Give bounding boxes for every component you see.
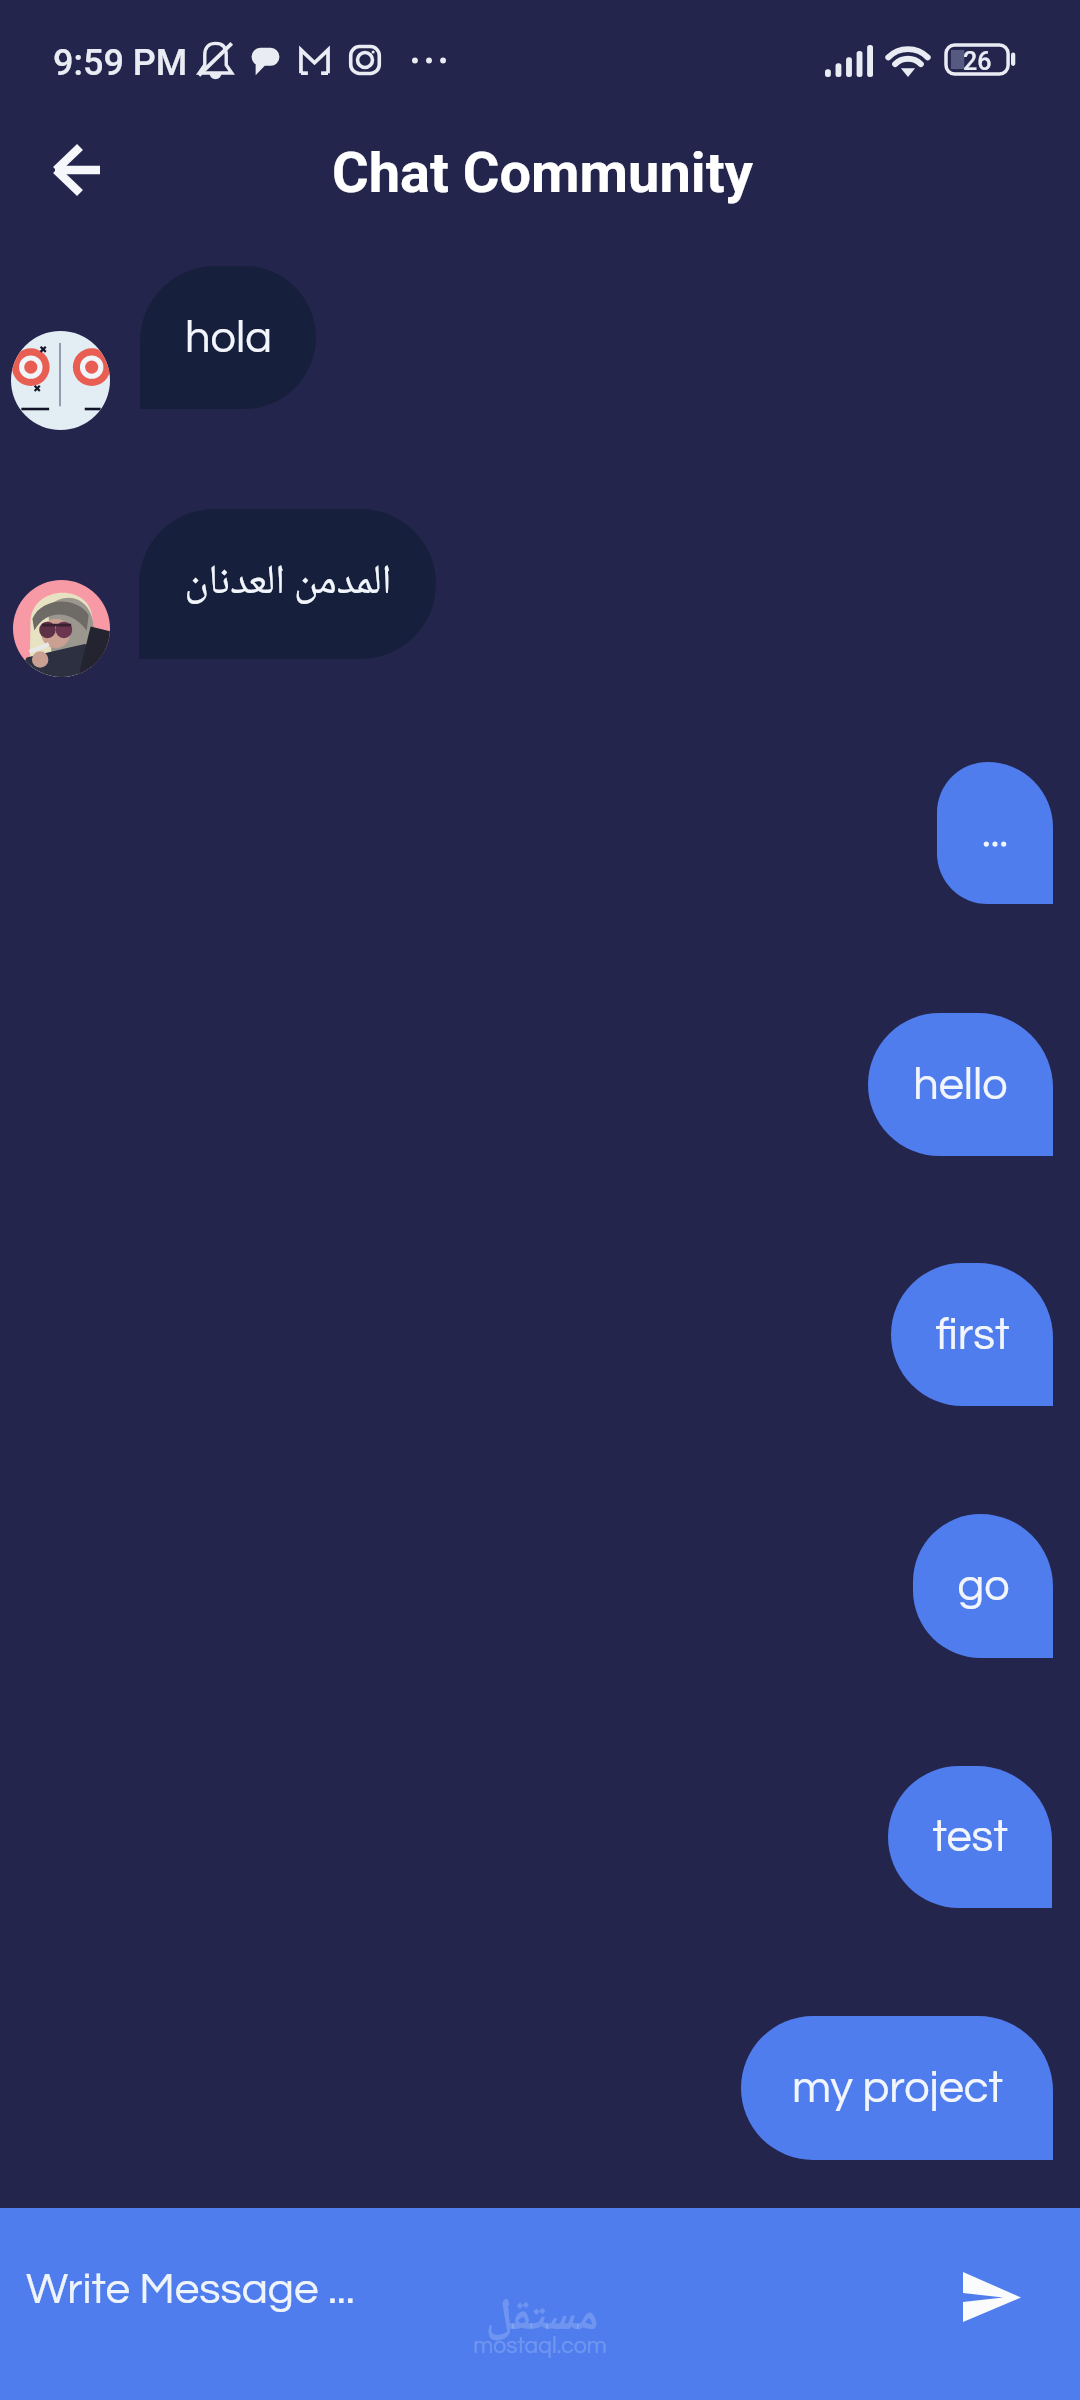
button[interactable]: Profile picture — [11, 331, 110, 430]
button[interactable]: hello — [868, 1013, 1053, 1156]
staticText: my project — [792, 2065, 1003, 2111]
button[interactable]: Send — [951, 2266, 1036, 2328]
staticText: Chat Community — [332, 140, 753, 206]
button[interactable]: go — [913, 1514, 1053, 1658]
button[interactable]: Typing — [937, 762, 1053, 904]
button[interactable]: Profile picture — [13, 580, 110, 677]
button[interactable]: Back — [40, 132, 116, 208]
staticText: 26 — [963, 47, 992, 76]
button[interactable]: my project — [741, 2016, 1053, 2160]
button[interactable]: Write Message ... — [0, 2208, 930, 2400]
staticText: hola — [185, 315, 272, 361]
staticText: first — [935, 1312, 1010, 1358]
staticText: mostaql.com — [473, 2334, 607, 2358]
staticText: مستقل — [475, 2282, 609, 2352]
button[interactable]: test — [888, 1766, 1052, 1908]
button[interactable]: hola — [140, 266, 316, 409]
staticText: test — [932, 1814, 1008, 1860]
staticText: go — [957, 1563, 1010, 1609]
button[interactable]: المدمن العدنان — [139, 509, 436, 659]
staticText: 9:59 PM — [53, 42, 188, 84]
staticText: hello — [913, 1062, 1008, 1108]
button[interactable]: first — [891, 1263, 1053, 1406]
staticText: المدمن العدنان — [184, 549, 392, 619]
staticText: Write Message ... — [26, 2267, 355, 2312]
